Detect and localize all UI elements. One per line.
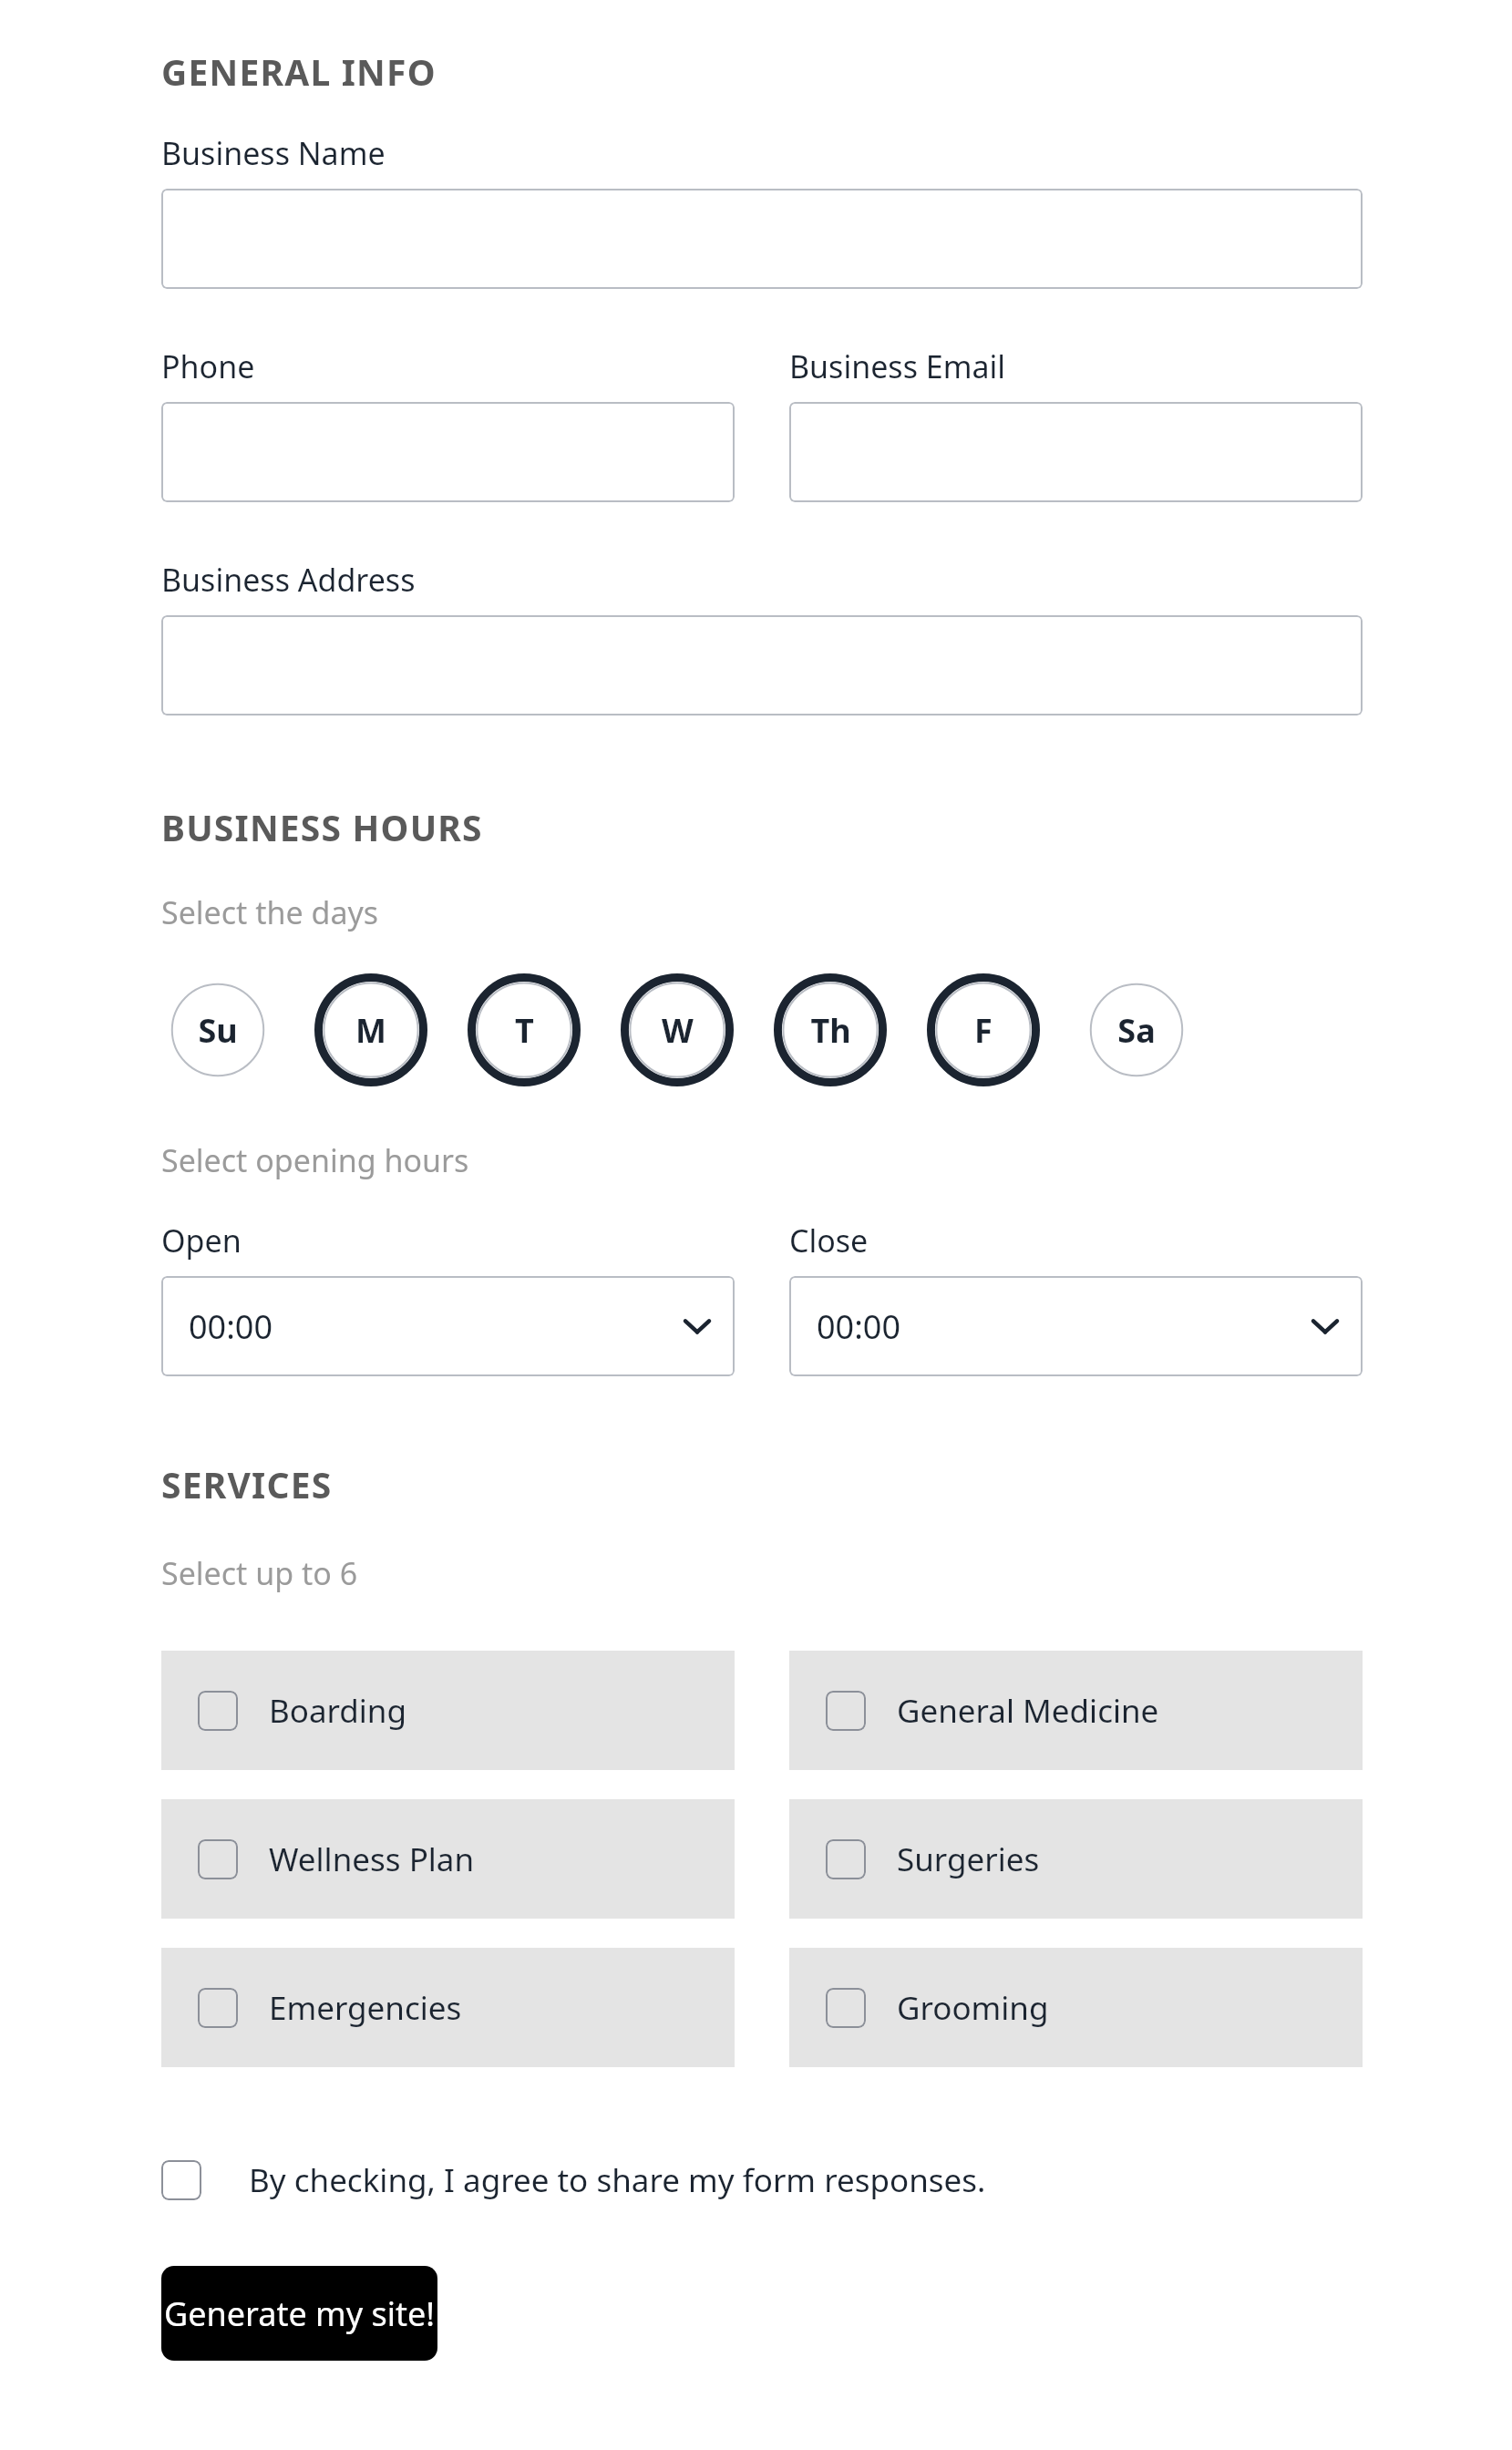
staticText: Select the days [161,891,379,933]
staticText: F [974,1008,993,1053]
staticText: Business Name [161,132,386,174]
button[interactable]: Sa [1080,973,1193,1086]
button[interactable]: M [314,973,427,1086]
staticText: BUSINESS HOURS [161,803,483,851]
staticText: Su [198,1008,238,1053]
button[interactable]: Generate my site! [161,2266,437,2361]
staticText: Sa [1117,1008,1156,1053]
staticText: Close [789,1220,869,1261]
staticText: Open [161,1220,242,1261]
button[interactable]: Emergencies [161,1948,735,2067]
staticText: Th [810,1008,851,1053]
staticText: Grooming [897,1986,1049,2030]
button[interactable]: Grooming [789,1948,1363,2067]
staticText: Generate my site! [164,2291,435,2336]
button[interactable] [161,189,1363,289]
button[interactable] [789,402,1363,502]
button[interactable] [161,402,735,502]
staticText: Phone [161,345,255,387]
button[interactable]: Surgeries [789,1799,1363,1919]
staticText: 00:00 [189,1304,273,1349]
button[interactable]: Th [774,973,887,1086]
button[interactable]: T [468,973,581,1086]
staticText: General Medicine [897,1689,1159,1733]
staticText: 00:00 [817,1304,901,1349]
staticText: W [662,1008,694,1053]
button[interactable]: 00:00 [789,1276,1363,1376]
staticText: M [355,1008,386,1053]
button[interactable]: By checking, I agree to share my form re… [161,2158,1363,2202]
staticText: Business Address [161,559,416,601]
staticText: Select up to 6 [161,1552,358,1594]
staticText: Boarding [269,1689,407,1733]
button[interactable]: Wellness Plan [161,1799,735,1919]
staticText: SERVICES [161,1460,333,1508]
staticText: Select opening hours [161,1139,469,1181]
button[interactable]: W [621,973,734,1086]
staticText: T [515,1008,534,1053]
staticText: Wellness Plan [269,1837,475,1881]
staticText: Emergencies [269,1986,462,2030]
button[interactable]: General Medicine [789,1651,1363,1770]
staticText: Business Email [789,345,1006,387]
staticText: Surgeries [897,1837,1040,1881]
button[interactable]: Su [161,973,274,1086]
button[interactable]: 00:00 [161,1276,735,1376]
staticText: By checking, I agree to share my form re… [249,2158,986,2202]
button[interactable]: Boarding [161,1651,735,1770]
button[interactable]: F [927,973,1040,1086]
staticText: GENERAL INFO [161,47,437,96]
button[interactable] [161,615,1363,715]
